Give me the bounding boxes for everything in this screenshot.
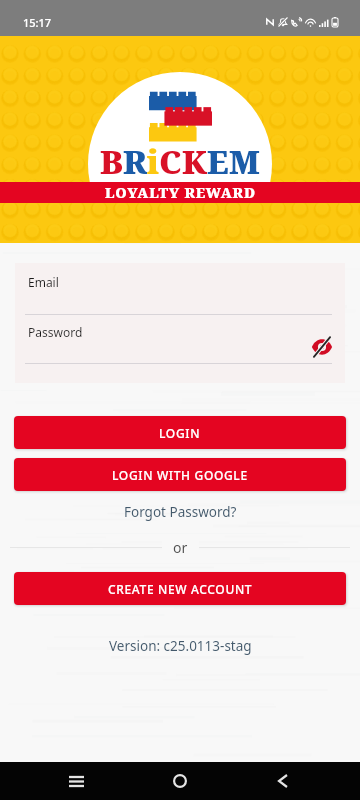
staticText: R [123, 140, 147, 184]
button[interactable]: Forgot Password? [0, 500, 360, 524]
staticText: K [182, 140, 207, 184]
staticText: Forgot Password? [124, 503, 237, 521]
staticText: LOYALTY REWARD [105, 183, 256, 202]
button[interactable]: Back [259, 765, 307, 797]
staticText: i [147, 140, 159, 184]
staticText: 15:17 [23, 15, 52, 30]
staticText: Version: c25.0113-stag [109, 637, 252, 655]
button[interactable]: LOGIN [14, 416, 346, 449]
staticText: Email [28, 274, 59, 290]
staticText: CREATE NEW ACCOUNT [108, 581, 253, 597]
button[interactable]: CREATE NEW ACCOUNT [14, 572, 346, 605]
staticText: LOGIN WITH GOOGLE [112, 467, 248, 483]
button[interactable]: Recent apps [52, 765, 100, 797]
button[interactable]: LOGIN WITH GOOGLE [14, 458, 346, 491]
staticText: LOGIN [159, 425, 201, 441]
staticText: B [100, 140, 123, 184]
staticText: C [159, 140, 182, 184]
staticText: Password [28, 324, 83, 340]
staticText: E [207, 140, 229, 184]
button[interactable]: Show password [306, 331, 338, 363]
staticText: M [229, 140, 260, 184]
button[interactable]: Home [156, 765, 204, 797]
staticText: or [173, 538, 188, 556]
